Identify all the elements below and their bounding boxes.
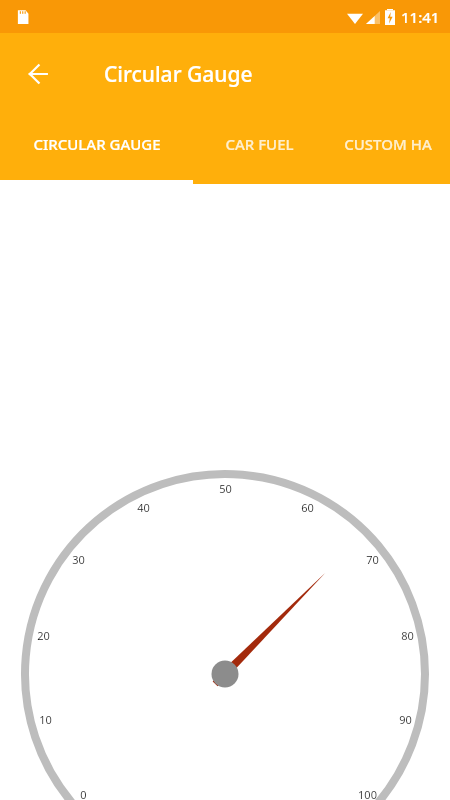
staticText: 11:41 — [401, 7, 440, 27]
button[interactable]: CIRCULAR GAUGE — [0, 123, 193, 184]
staticText: 90 — [399, 712, 412, 727]
staticText: 30 — [72, 552, 85, 567]
staticText: 0 — [80, 787, 87, 800]
staticText: CAR FUEL — [225, 134, 294, 154]
staticText: 80 — [401, 628, 414, 643]
staticText: 50 — [219, 481, 232, 496]
staticText: CUSTOM HA — [344, 134, 432, 154]
staticText: CIRCULAR GAUGE — [33, 134, 161, 154]
staticText: Circular Gauge — [104, 60, 253, 89]
staticText: 60 — [301, 500, 314, 515]
staticText: 20 — [37, 628, 50, 643]
button[interactable]: CUSTOM HA — [325, 123, 450, 184]
staticText: 70 — [366, 552, 379, 567]
staticText: 40 — [137, 500, 150, 515]
button[interactable]: Back — [0, 50, 48, 98]
button[interactable]: CAR FUEL — [193, 123, 325, 184]
staticText: 10 — [39, 712, 52, 727]
staticText: 100 — [358, 787, 377, 800]
